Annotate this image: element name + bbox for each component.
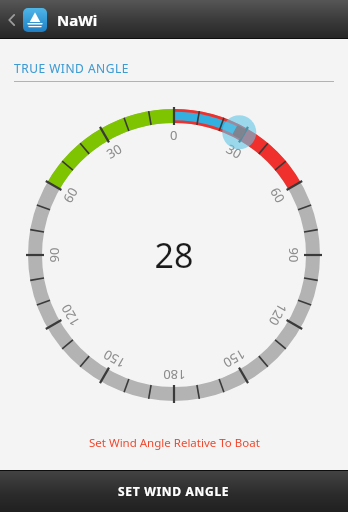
button[interactable]: Navigate up: [0, 0, 348, 39]
staticText: SET WIND ANGLE: [118, 483, 230, 499]
staticText: TRUE WIND ANGLE: [14, 60, 129, 76]
button[interactable]: Wind angle 28 degrees: [0, 82, 348, 435]
staticText: Set Wind Angle Relative To Boat: [89, 435, 260, 451]
button[interactable]: SET WIND ANGLE: [0, 470, 348, 512]
staticText: NaWi: [57, 10, 98, 30]
